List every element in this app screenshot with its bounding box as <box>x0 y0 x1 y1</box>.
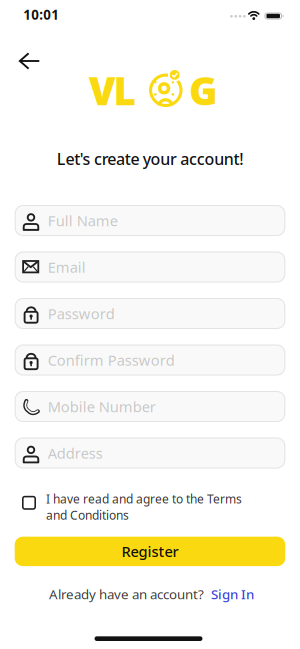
staticText: V <box>89 64 116 116</box>
button[interactable]: Address <box>15 437 285 468</box>
button[interactable]: Agree to Terms and Conditions <box>22 491 242 523</box>
staticText: Confirm Password <box>48 350 175 370</box>
staticText: Mobile Number <box>48 397 156 416</box>
staticText: Let's create your account! <box>57 148 243 169</box>
staticText: Already have an account? <box>49 585 204 603</box>
staticText: Full Name <box>48 211 118 230</box>
staticText: Email <box>48 257 86 277</box>
staticText: Password <box>48 304 115 323</box>
button[interactable]: Confirm Password <box>15 344 285 375</box>
staticText: Register <box>121 542 178 561</box>
button[interactable]: Sign In <box>211 585 254 603</box>
staticText: G <box>189 64 218 116</box>
staticText: and Conditions <box>46 507 129 523</box>
button[interactable]: Back <box>18 53 40 69</box>
staticText: L <box>113 64 136 116</box>
button[interactable]: Mobile Number <box>15 391 285 422</box>
staticText: Address <box>48 443 103 463</box>
staticText: 10:01 <box>23 6 59 23</box>
button[interactable]: Full Name <box>15 205 285 236</box>
button[interactable]: Register <box>15 537 285 566</box>
staticText: Sign In <box>211 585 254 603</box>
button[interactable]: Password <box>15 298 285 329</box>
button[interactable]: Email <box>15 251 285 282</box>
staticText: I have read and agree to the Terms <box>46 491 242 507</box>
